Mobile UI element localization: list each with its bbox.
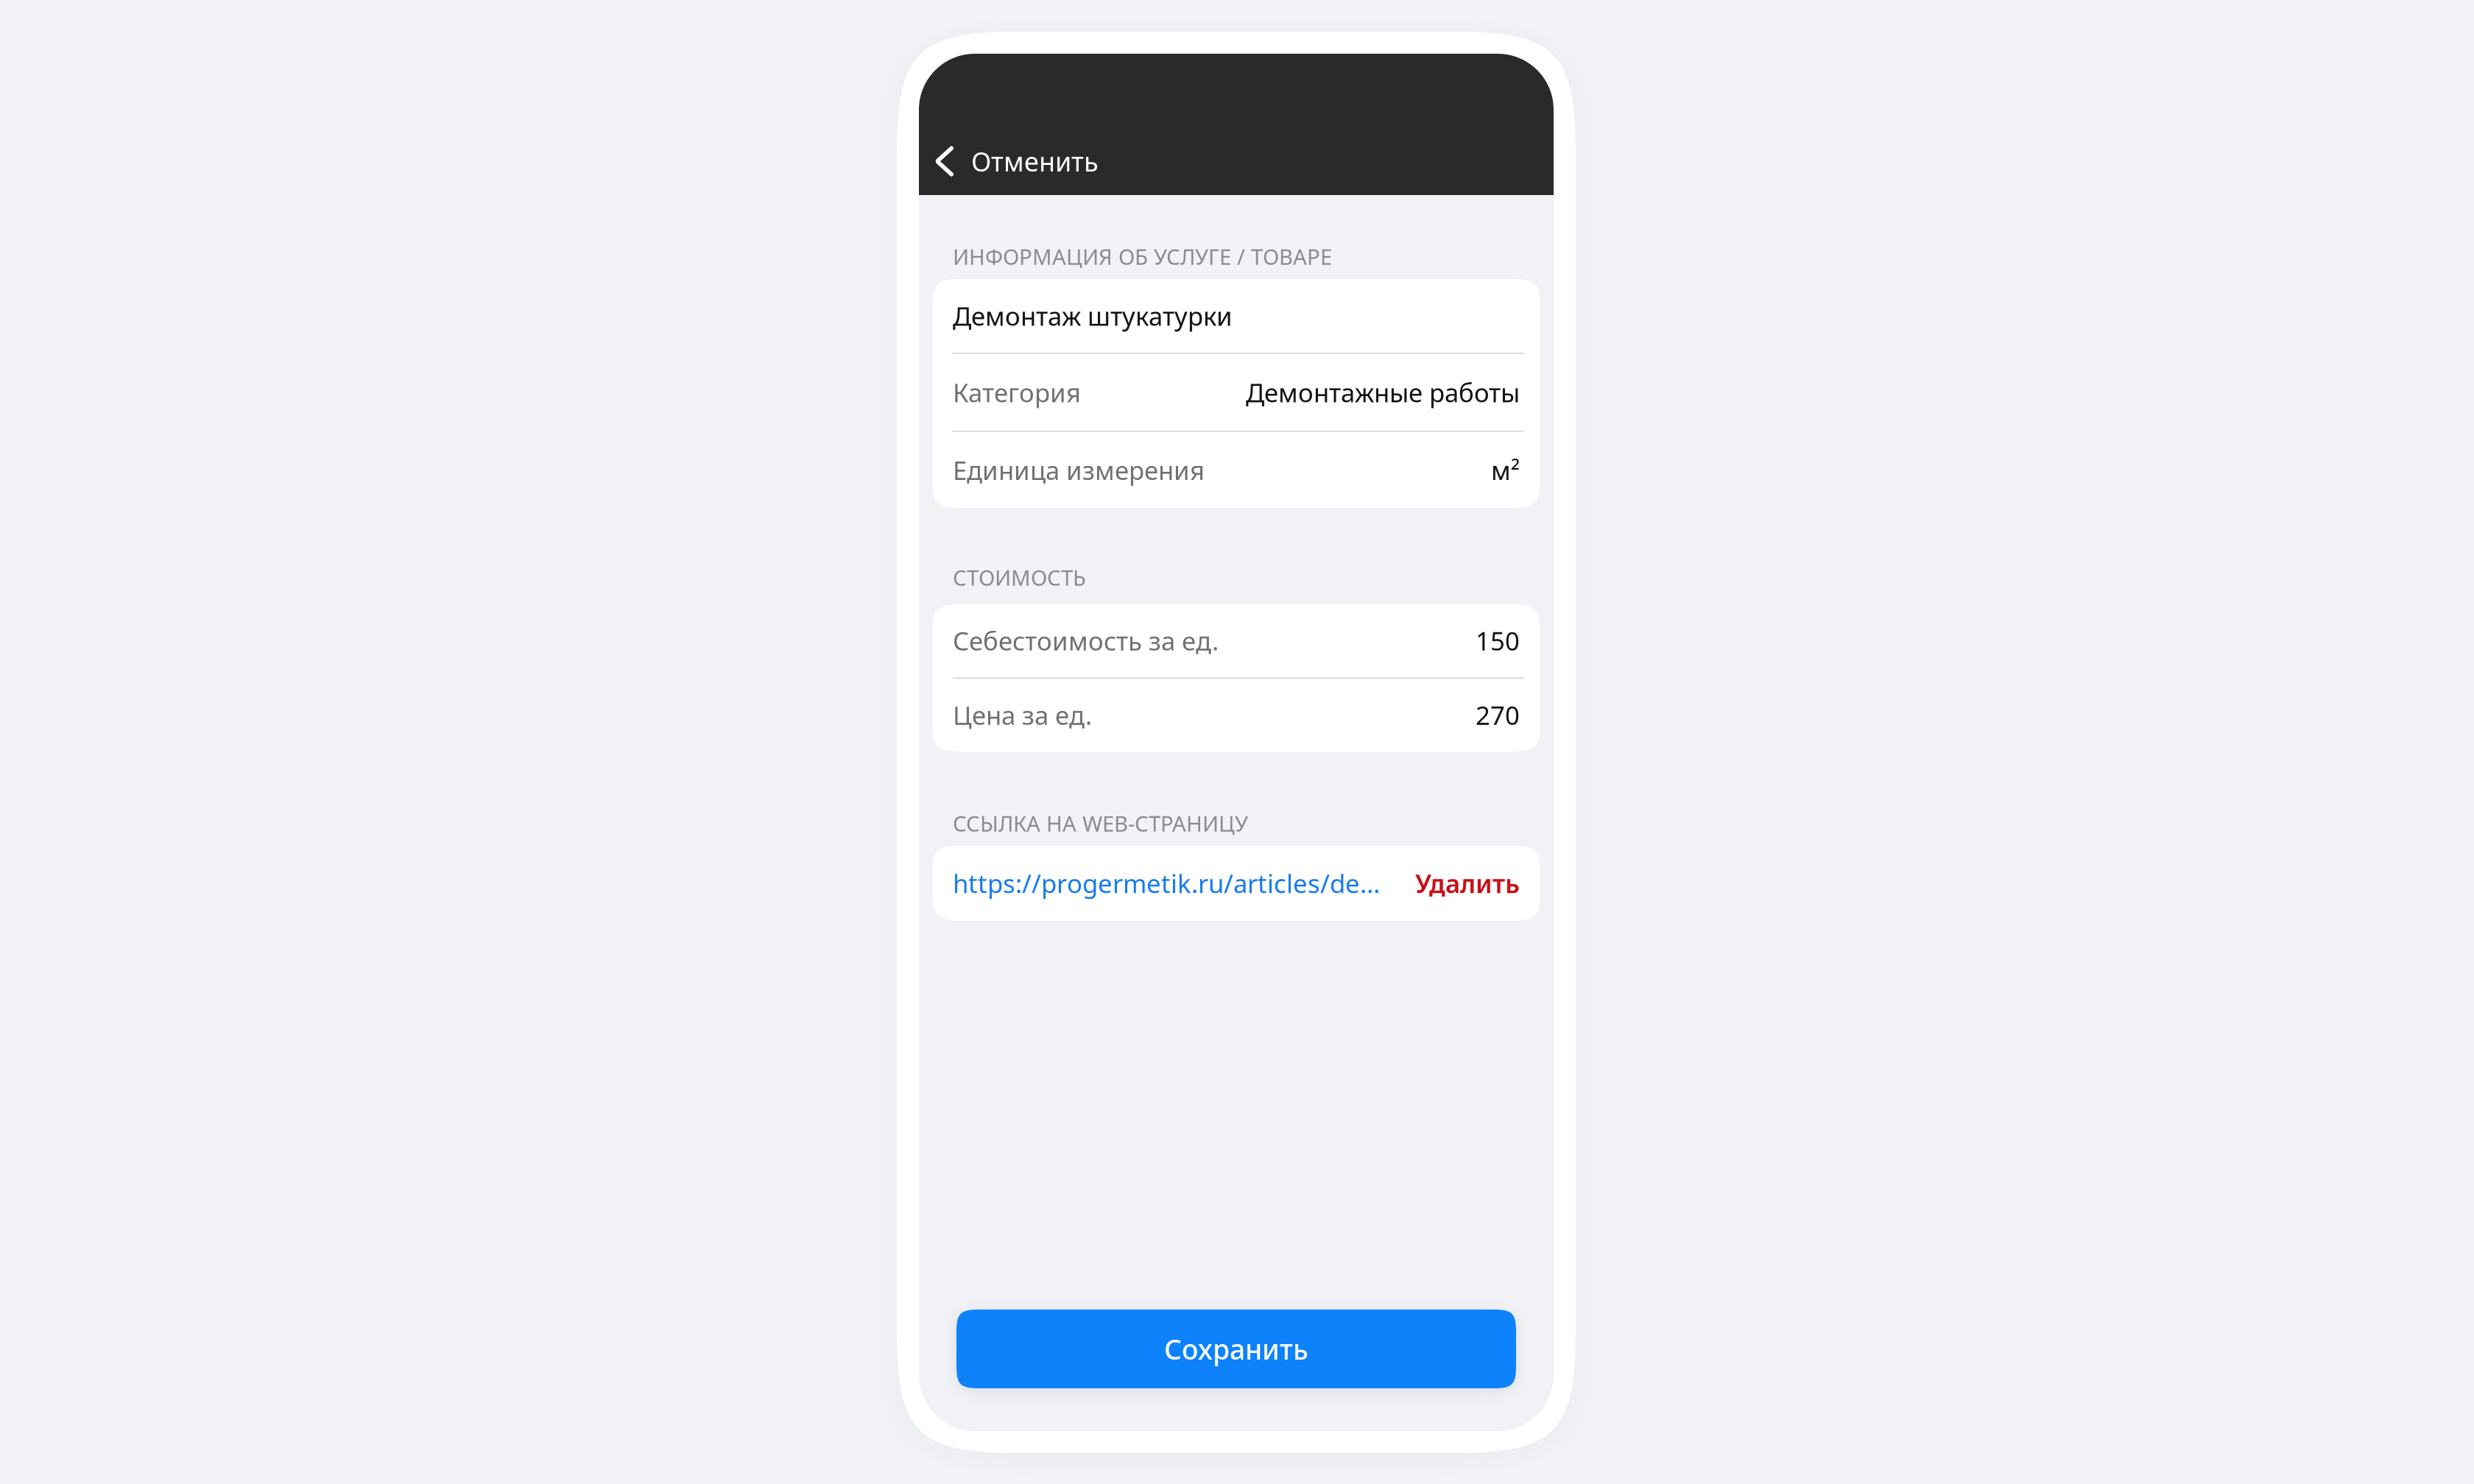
button[interactable]: Отменить — [919, 138, 1110, 185]
staticText: 270 — [1476, 698, 1520, 732]
staticText: ИНФОРМАЦИЯ ОБ УСЛУГЕ / ТОВАРЕ — [953, 242, 1332, 271]
staticText: СТОИМОСТЬ — [953, 563, 1086, 592]
button[interactable]: https://progermetik.ru/articles/de… — [953, 866, 1380, 900]
staticText: Себестоимость за ед. — [953, 624, 1219, 658]
staticText: Цена за ед. — [953, 698, 1092, 732]
staticText: Демонтаж штукатурки — [953, 299, 1233, 333]
button[interactable]: Себестоимость за ед. — [932, 604, 1540, 677]
staticText: Единица измерения — [953, 453, 1205, 487]
button[interactable]: Единица измерения — [932, 432, 1540, 508]
staticText: Демонтажные работы — [1246, 375, 1520, 409]
button[interactable]: Удалить — [1415, 866, 1520, 900]
button[interactable]: Цена за ед. — [932, 679, 1540, 751]
staticText: 150 — [1476, 624, 1520, 658]
staticText: Удалить — [1415, 866, 1520, 900]
staticText: м² — [1491, 453, 1520, 487]
button[interactable]: Сохранить — [956, 1310, 1516, 1388]
staticText: Категория — [953, 375, 1081, 409]
button[interactable]: Категория — [932, 354, 1540, 431]
staticText: ССЫЛКА НА WEB-СТРАНИЦУ — [953, 809, 1248, 838]
button[interactable]: Демонтаж штукатурки — [932, 279, 1540, 353]
staticText: Отменить — [971, 144, 1099, 179]
staticText: https://progermetik.ru/articles/de… — [953, 866, 1380, 900]
staticText: Сохранить — [1164, 1331, 1308, 1367]
